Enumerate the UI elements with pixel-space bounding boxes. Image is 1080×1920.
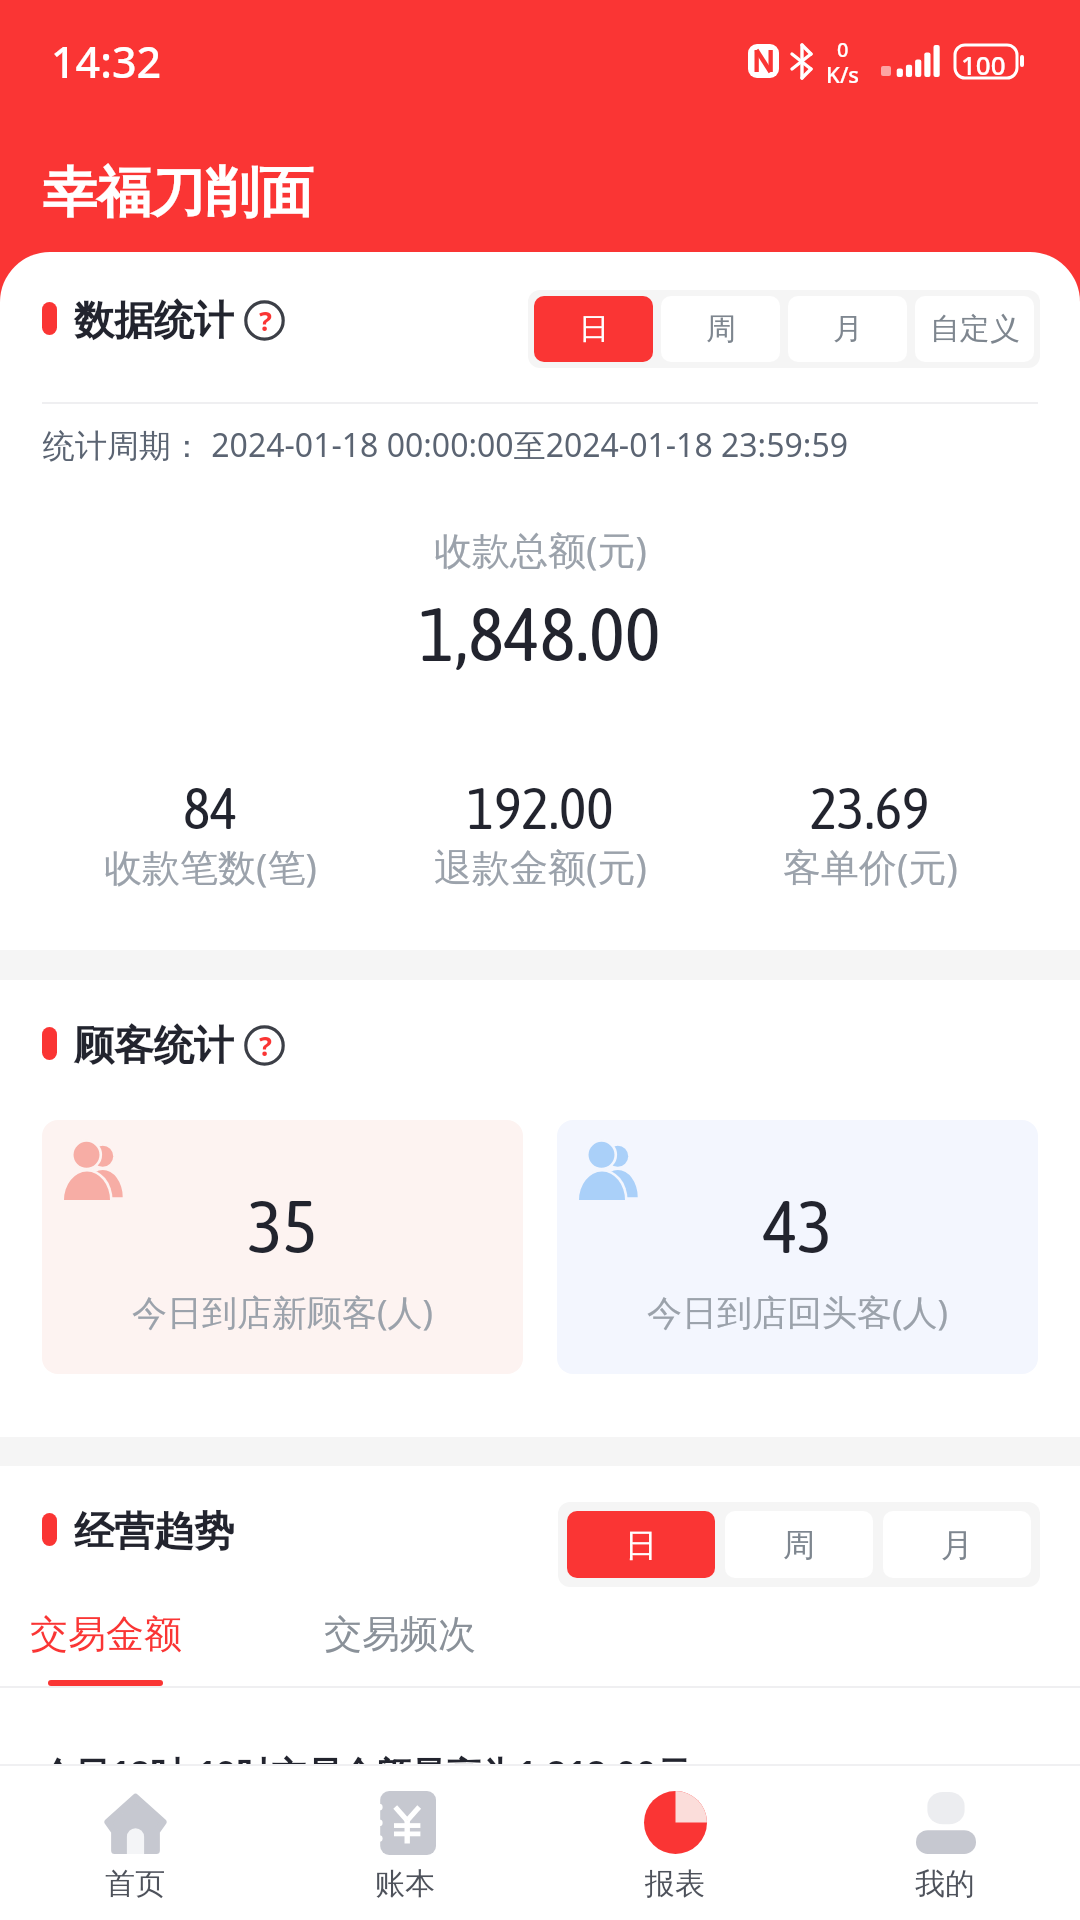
- button[interactable]: 说明: [244, 1025, 285, 1066]
- button[interactable]: 账本: [270, 1766, 540, 1920]
- button[interactable]: 日: [567, 1511, 715, 1578]
- button[interactable]: 月: [883, 1511, 1031, 1578]
- staticText: 35: [248, 1184, 318, 1254]
- staticText: 100: [961, 47, 1006, 82]
- staticText: 14:32: [51, 32, 162, 91]
- staticText: 统计周期： 2024-01-18 00:00:00至2024-01-18 23:…: [43, 423, 848, 467]
- button[interactable]: 说明: [244, 300, 285, 341]
- button[interactable]: 交易频次: [324, 1596, 476, 1672]
- staticText: 1,848.00: [419, 590, 661, 677]
- staticText: 周: [706, 310, 736, 348]
- staticText: 我的: [915, 1865, 975, 1903]
- button[interactable]: 35: [42, 1120, 523, 1374]
- staticText: 报表: [645, 1865, 705, 1903]
- staticText: 今日到店新顾客(人): [132, 1288, 434, 1336]
- button[interactable]: 首页: [0, 1766, 270, 1920]
- staticText: 首页: [105, 1865, 165, 1903]
- staticText: 收款笔数(笔): [104, 840, 317, 892]
- staticText: 月: [941, 1525, 973, 1565]
- button[interactable]: 周: [661, 296, 780, 362]
- staticText: 月: [833, 310, 863, 348]
- staticText: 今日18时-19时交易金额最高为1,818.00元: [40, 1750, 692, 1764]
- staticText: 自定义: [930, 310, 1020, 348]
- staticText: 日: [579, 310, 609, 348]
- staticText: 退款金额(元): [434, 840, 647, 892]
- staticText: 客单价(元): [783, 840, 958, 892]
- staticText: 交易频次: [324, 1610, 476, 1658]
- button[interactable]: 周: [725, 1511, 873, 1578]
- staticText: 账本: [375, 1865, 435, 1903]
- staticText: 0: [837, 36, 849, 63]
- button[interactable]: 交易金额: [30, 1596, 182, 1672]
- staticText: 幸福刀削面: [43, 159, 313, 227]
- staticText: 周: [783, 1525, 815, 1565]
- staticText: ?: [259, 1027, 272, 1064]
- button[interactable]: 日: [534, 296, 653, 362]
- staticText: 收款总额(元): [434, 523, 647, 575]
- button[interactable]: 报表: [540, 1766, 810, 1920]
- staticText: 43: [763, 1184, 833, 1254]
- staticText: 经营趋势: [74, 1506, 234, 1556]
- button[interactable]: 我的: [810, 1766, 1080, 1920]
- staticText: ?: [259, 302, 272, 339]
- button[interactable]: 43: [557, 1120, 1038, 1374]
- staticText: 84: [183, 775, 238, 841]
- button[interactable]: 月: [788, 296, 907, 362]
- button[interactable]: 自定义: [915, 296, 1034, 362]
- staticText: 交易金额: [30, 1610, 182, 1658]
- staticText: 23.69: [810, 775, 930, 841]
- staticText: 数据统计: [74, 295, 234, 345]
- staticText: 顾客统计: [74, 1020, 234, 1070]
- staticText: 日: [625, 1525, 657, 1565]
- staticText: 今日到店回头客(人): [647, 1288, 949, 1336]
- staticText: K/s: [826, 59, 860, 89]
- staticText: 192.00: [467, 775, 614, 841]
